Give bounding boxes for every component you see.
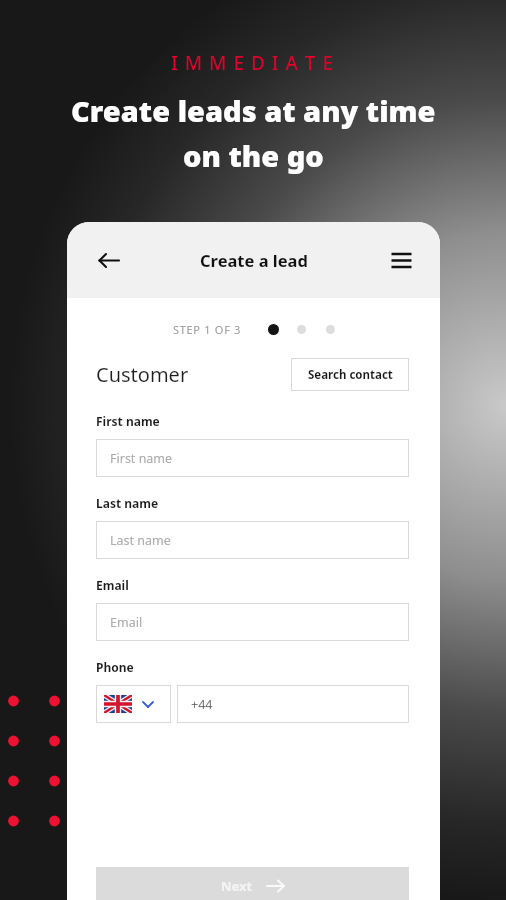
staticText: First name <box>96 413 160 429</box>
button[interactable]: Email <box>96 603 409 641</box>
staticText: Create leads at any time <box>71 91 436 130</box>
button[interactable]: Next <box>96 867 409 900</box>
staticText: Phone <box>96 659 134 675</box>
staticText: on the go <box>183 136 324 175</box>
button[interactable]: Last name <box>96 521 409 559</box>
staticText: +44 <box>191 696 213 713</box>
button[interactable]: First name <box>96 439 409 477</box>
staticText: Email <box>110 614 143 631</box>
staticText: Last name <box>96 495 159 511</box>
staticText: Email <box>96 577 129 593</box>
button[interactable]: +44 <box>177 685 409 723</box>
staticText: Create a lead <box>200 249 308 271</box>
staticText: I M M E D I A T E <box>171 50 335 76</box>
button[interactable]: Menu <box>384 243 418 277</box>
staticText: Last name <box>110 532 171 549</box>
staticText: STEP 1 OF 3 <box>173 322 242 337</box>
button[interactable]: Back <box>91 243 125 277</box>
staticText: First name <box>110 450 173 467</box>
staticText: Next <box>221 877 253 895</box>
staticText: Customer <box>96 361 189 388</box>
button[interactable]: Search contact <box>291 358 409 391</box>
staticText: Search contact <box>308 367 393 383</box>
button[interactable]: Select country code <box>96 685 171 723</box>
